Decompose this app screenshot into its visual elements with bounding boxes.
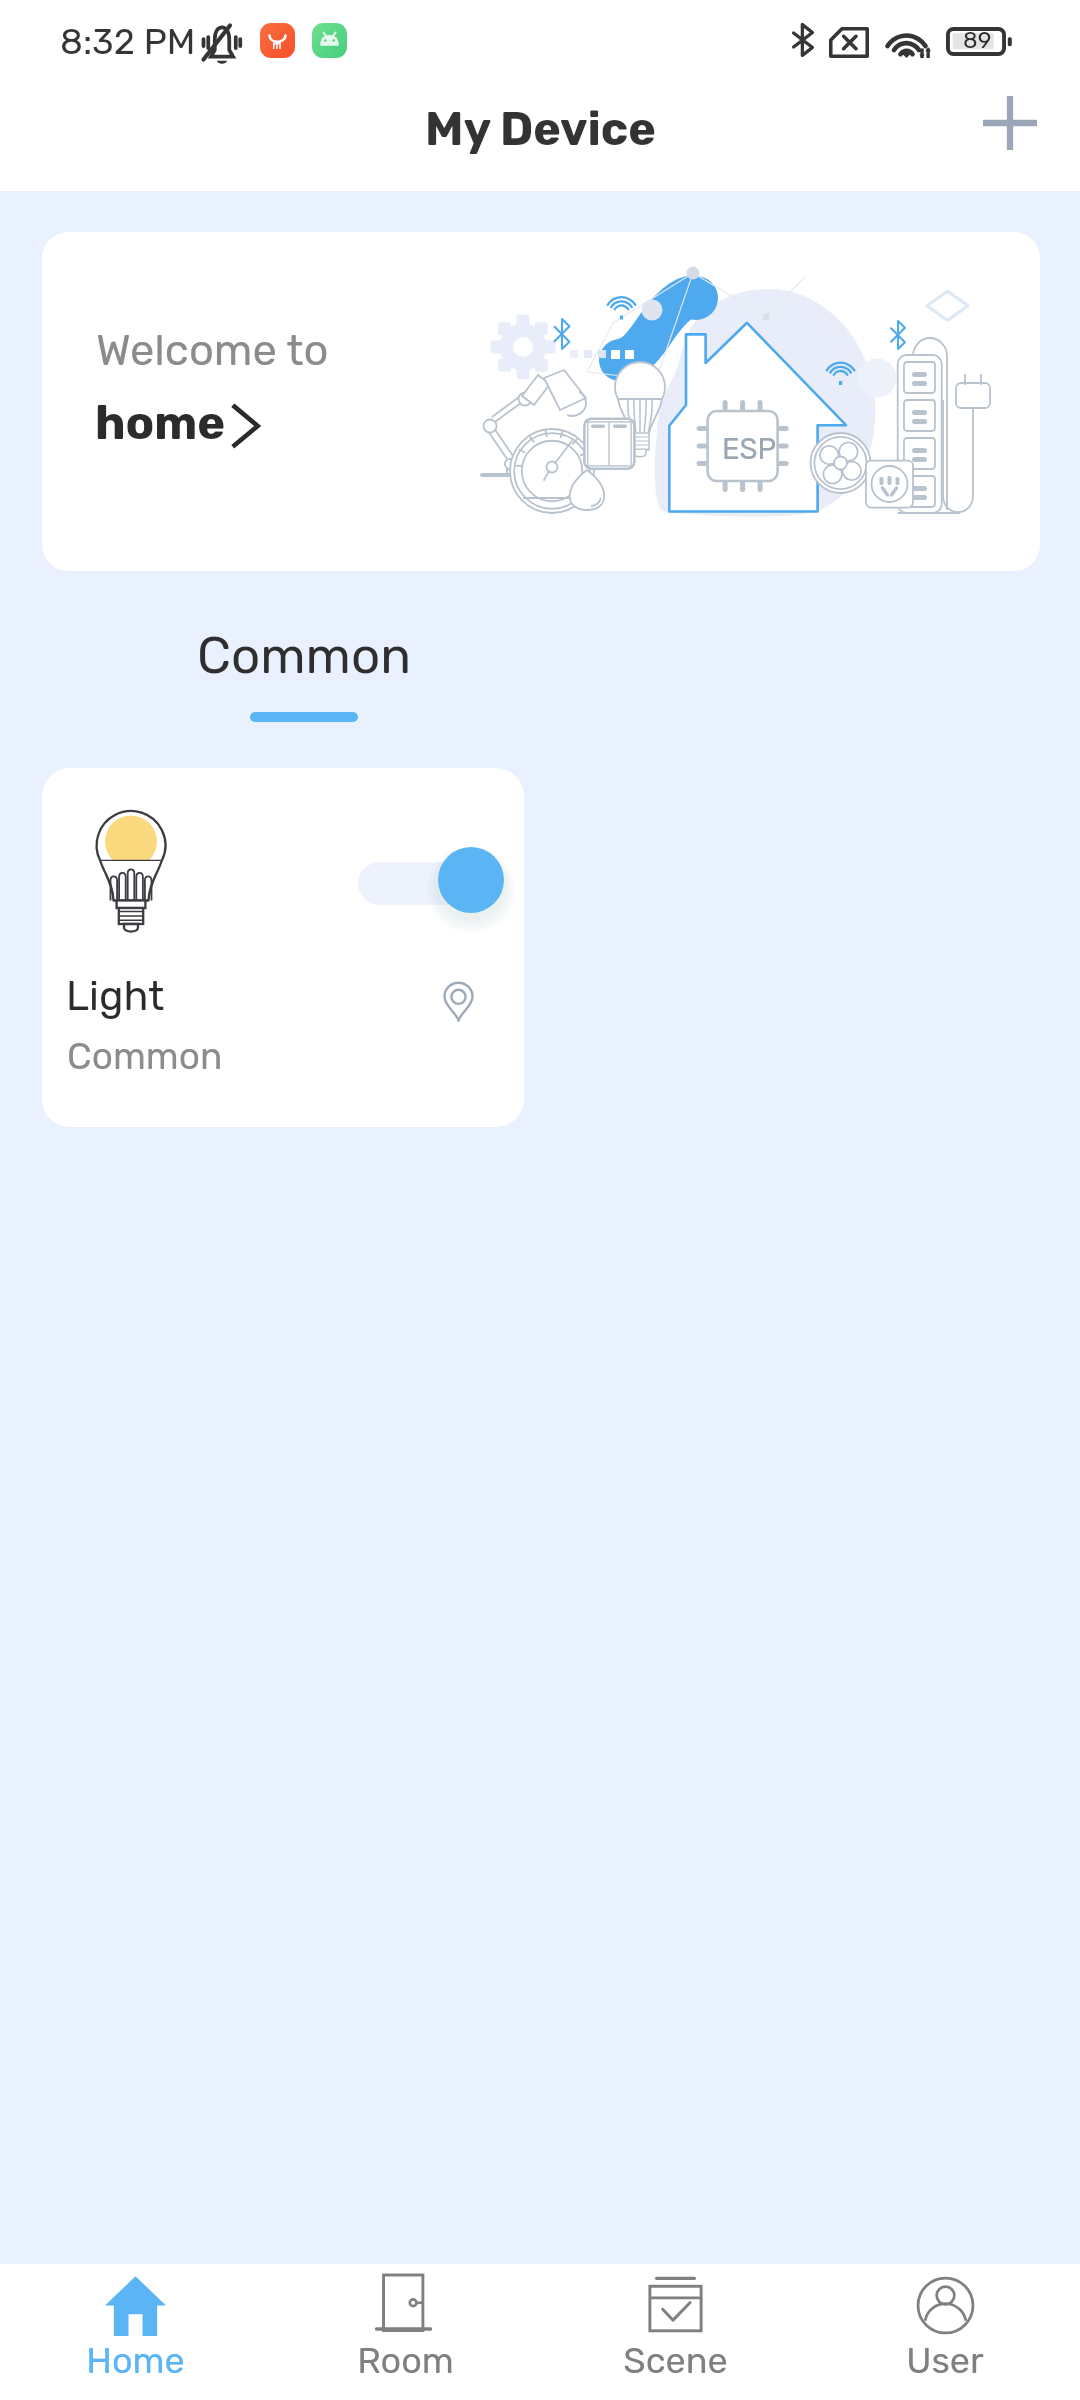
staticText: User	[906, 2339, 984, 2382]
staticText: Common	[67, 1034, 223, 1078]
staticText: 8:32 PM	[60, 20, 196, 63]
button[interactable]: Home	[0, 2264, 270, 2382]
staticText: ESP	[722, 432, 777, 466]
staticText: Common	[197, 625, 412, 685]
button[interactable]: User	[810, 2264, 1080, 2382]
button[interactable]: Light power toggle	[438, 847, 504, 913]
staticText: Scene	[623, 2339, 728, 2382]
staticText: Room	[357, 2339, 454, 2382]
button[interactable]: Add device	[969, 82, 1051, 164]
button[interactable]: Welcome to	[42, 232, 1040, 571]
button[interactable]: Location	[434, 978, 482, 1026]
button[interactable]: Scene	[540, 2264, 810, 2382]
staticText: home	[95, 395, 226, 451]
staticText: My Device	[425, 102, 656, 157]
button[interactable]: Common	[180, 616, 428, 736]
staticText: Welcome to	[96, 324, 329, 376]
button[interactable]: Light power toggle	[42, 768, 524, 1127]
staticText: 89	[963, 26, 992, 53]
button[interactable]: Room	[270, 2264, 540, 2382]
staticText: Home	[86, 2339, 185, 2382]
staticText: Light	[66, 972, 165, 1021]
